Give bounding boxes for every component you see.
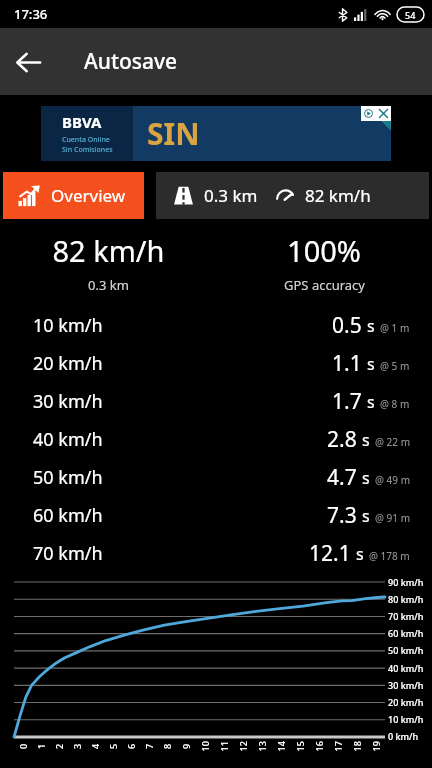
button[interactable]: Ad choices: [361, 106, 376, 121]
button[interactable]: 50 km/h: [0, 458, 432, 496]
staticText: 2: [53, 743, 65, 749]
button[interactable]: 70 km/h: [0, 534, 432, 572]
staticText: 82 km/h: [305, 184, 371, 207]
staticText: s: [356, 543, 364, 565]
staticText: 12.1: [309, 539, 351, 568]
staticText: 80 km/h: [388, 593, 424, 605]
staticText: @ 91 m: [375, 511, 410, 525]
staticText: 4: [89, 743, 101, 749]
staticText: 9: [180, 743, 192, 749]
staticText: 17:36: [14, 5, 48, 23]
staticText: s: [362, 505, 370, 527]
button[interactable]: 20 km/h: [0, 344, 432, 382]
staticText: 60 km/h: [388, 627, 424, 639]
staticText: 5: [107, 743, 119, 749]
staticText: 100%: [287, 231, 361, 270]
staticText: 16: [312, 740, 324, 751]
staticText: 20 km/h: [33, 351, 103, 376]
staticText: 0.5: [332, 311, 362, 340]
staticText: 50 km/h: [388, 644, 424, 656]
staticText: Overview: [51, 184, 126, 207]
staticText: s: [362, 429, 370, 451]
staticText: 90 km/h: [388, 576, 424, 588]
staticText: 0 km/h: [388, 730, 419, 742]
staticText: 60 km/h: [33, 503, 103, 528]
button[interactable]: 0.3 km: [156, 172, 429, 219]
staticText: 14: [274, 740, 286, 751]
staticText: @ 178 m: [369, 549, 410, 563]
staticText: 1: [35, 743, 47, 749]
button[interactable]: 30 km/h: [0, 382, 432, 420]
staticText: 1.1: [332, 349, 362, 378]
staticText: s: [367, 391, 375, 413]
staticText: 30 km/h: [388, 679, 424, 691]
staticText: 18: [350, 740, 362, 751]
staticText: 7: [143, 743, 155, 749]
staticText: Sin Comisiones: [62, 145, 113, 155]
staticText: 8: [161, 743, 173, 749]
staticText: 70 km/h: [33, 541, 103, 566]
button[interactable]: Back: [0, 34, 56, 90]
staticText: s: [367, 315, 375, 337]
staticText: 10 km/h: [388, 713, 424, 725]
staticText: 1.7: [332, 387, 362, 416]
staticText: @ 5 m: [380, 359, 410, 373]
staticText: 20 km/h: [388, 696, 424, 708]
button[interactable]: Overview: [3, 172, 144, 219]
staticText: 82 km/h: [52, 231, 165, 270]
staticText: 54: [405, 9, 416, 21]
staticText: 0.3 km: [88, 276, 129, 294]
button[interactable]: 100%: [216, 231, 432, 294]
staticText: Cuenta Online: [62, 135, 110, 145]
button[interactable]: 10 km/h: [0, 306, 432, 344]
staticText: Autosave: [84, 47, 178, 76]
staticText: 0: [17, 743, 29, 749]
staticText: s: [367, 353, 375, 375]
staticText: @ 8 m: [380, 397, 410, 411]
staticText: @ 1 m: [380, 321, 410, 335]
staticText: s: [362, 467, 370, 489]
staticText: 13: [255, 740, 267, 751]
staticText: 40 km/h: [33, 427, 103, 452]
staticText: BBVA: [62, 112, 102, 132]
staticText: 6: [125, 743, 137, 749]
staticText: 30 km/h: [33, 389, 103, 414]
button[interactable]: BBVA: [41, 106, 391, 161]
staticText: SIN: [147, 113, 200, 154]
button[interactable]: 40 km/h: [0, 420, 432, 458]
staticText: 10: [198, 740, 210, 751]
staticText: 17: [331, 740, 343, 751]
button[interactable]: 60 km/h: [0, 496, 432, 534]
staticText: GPS accuracy: [284, 276, 365, 294]
button[interactable]: Close ad: [376, 106, 391, 121]
staticText: 19: [369, 740, 381, 751]
staticText: 7.3: [327, 501, 357, 530]
staticText: 15: [293, 740, 305, 751]
staticText: 0.3 km: [204, 184, 258, 207]
staticText: 2.8: [327, 425, 357, 454]
staticText: 11: [217, 740, 229, 751]
staticText: 50 km/h: [33, 465, 103, 490]
staticText: 3: [71, 743, 83, 749]
staticText: @ 22 m: [375, 435, 410, 449]
staticText: 12: [236, 740, 248, 751]
staticText: 40 km/h: [388, 662, 424, 674]
staticText: 70 km/h: [388, 610, 424, 622]
staticText: 10 km/h: [33, 313, 103, 338]
button[interactable]: 82 km/h: [0, 231, 216, 294]
staticText: 4.7: [327, 463, 357, 492]
staticText: @ 49 m: [375, 473, 410, 487]
